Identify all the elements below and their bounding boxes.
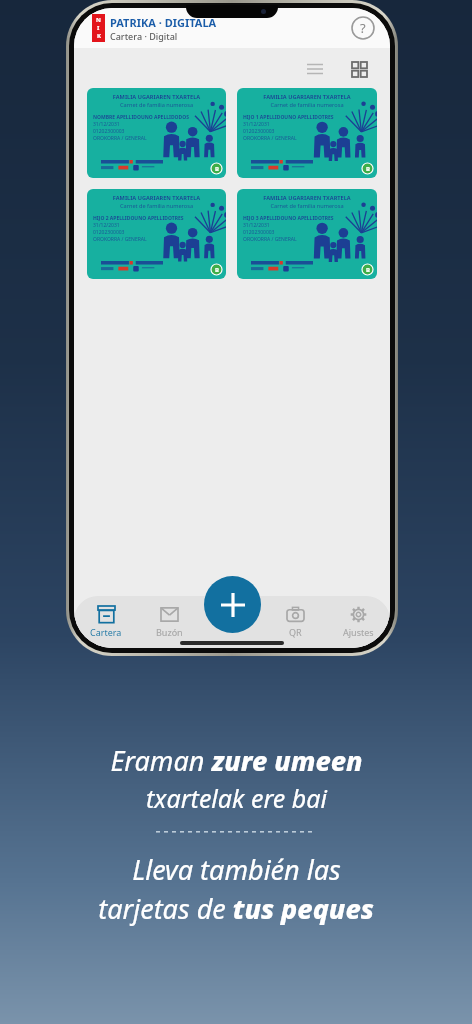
button[interactable]: Grid view	[346, 56, 372, 82]
staticText: B	[366, 266, 370, 274]
staticText: OROKORRA / GENERAL	[243, 236, 297, 243]
staticText: K	[97, 32, 101, 40]
staticText: OROKORRA / GENERAL	[93, 236, 147, 243]
staticText: Carnet de familia numerosa	[243, 202, 371, 210]
staticText: txartelak ere bai	[146, 781, 327, 815]
button[interactable]: FAMILIA UGARIAREN TXARTELA	[237, 88, 377, 178]
staticText: N	[96, 16, 101, 24]
staticText: Cartera	[90, 626, 122, 638]
staticText: 01202300003	[93, 128, 125, 135]
staticText: HIJO 3 APELLIDOUNO APELLIDOTRES	[243, 215, 334, 222]
button[interactable]: Add card	[204, 576, 261, 633]
button[interactable]: FAMILIA UGARIAREN TXARTELA	[87, 88, 226, 178]
staticText: HIJO 2 APELLIDOUNO APELLIDOTRES	[93, 215, 184, 222]
staticText: QR	[289, 626, 302, 638]
staticText: OROKORRA / GENERAL	[243, 135, 297, 142]
button[interactable]: QR	[264, 596, 327, 648]
staticText: FAMILIA UGARIAREN TXARTELA	[243, 194, 371, 202]
staticText: 01202300003	[243, 128, 275, 135]
button[interactable]: Cartera	[74, 596, 138, 648]
staticText: 01202300003	[243, 229, 275, 236]
staticText: tarjetas de tus peques	[98, 890, 374, 927]
staticText: FAMILIA UGARIAREN TXARTELA	[243, 93, 371, 101]
staticText: NOMBRE APELLIDOUNO APELLIDODOS	[93, 114, 189, 121]
staticText: HIJO 1 APELLIDOUNO APELLIDOTRES	[243, 114, 334, 121]
staticText: Carnet de familia numerosa	[93, 202, 220, 210]
staticText: Carnet de familia numerosa	[93, 101, 220, 109]
staticText: FAMILIA UGARIAREN TXARTELA	[93, 194, 220, 202]
staticText: Ajustes	[343, 626, 374, 638]
staticText: Cartera · Digital	[110, 30, 178, 42]
staticText: Buzón	[156, 626, 183, 638]
staticText: OROKORRA / GENERAL	[93, 135, 147, 142]
button[interactable]: FAMILIA UGARIAREN TXARTELA	[87, 189, 226, 279]
staticText: Eraman zure umeen	[110, 742, 363, 779]
button[interactable]: Help	[350, 15, 376, 41]
staticText: I	[97, 24, 100, 32]
button[interactable]: List view	[302, 56, 328, 82]
staticText: 01202300003	[93, 229, 125, 236]
staticText: B	[215, 165, 219, 173]
button[interactable]: FAMILIA UGARIAREN TXARTELA	[237, 189, 377, 279]
staticText: 31/12/2031	[93, 222, 120, 229]
button[interactable]: Ajustes	[327, 596, 390, 648]
staticText: 31/12/2031	[243, 222, 270, 229]
staticText: B	[366, 165, 370, 173]
staticText: ?	[360, 19, 366, 37]
staticText: Lleva también las	[132, 851, 341, 888]
staticText: 31/12/2031	[243, 121, 270, 128]
staticText: 31/12/2031	[93, 121, 120, 128]
staticText: B	[215, 266, 219, 274]
staticText: Carnet de familia numerosa	[243, 101, 371, 109]
button[interactable]: Buzón	[138, 596, 201, 648]
staticText: PATRIKA · DIGITALA	[110, 15, 217, 30]
staticText: FAMILIA UGARIAREN TXARTELA	[93, 93, 220, 101]
